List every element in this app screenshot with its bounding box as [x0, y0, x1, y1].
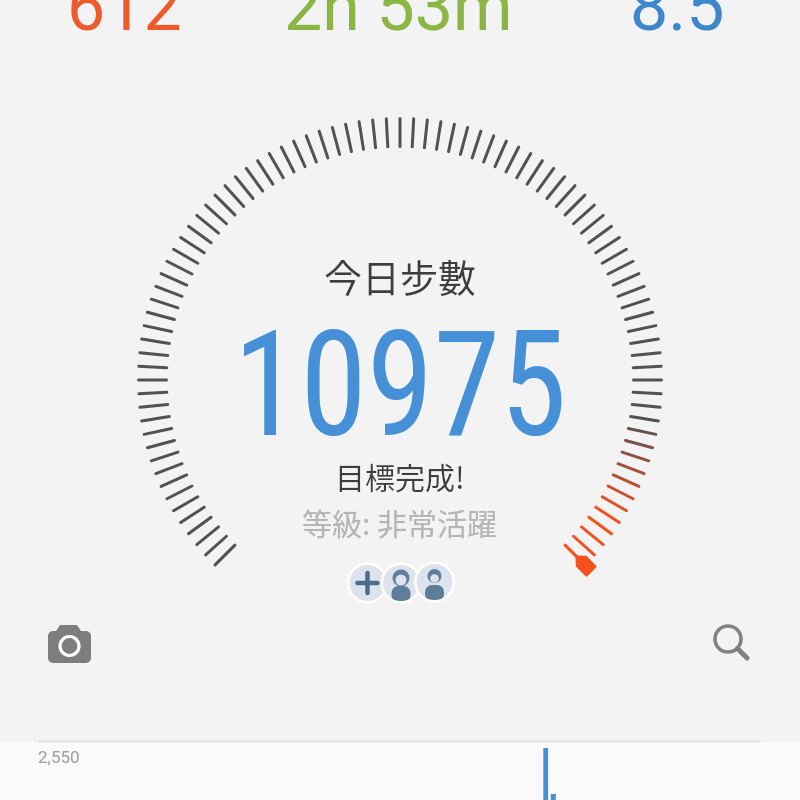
button[interactable]: [344, 560, 456, 606]
staticText: 2h 53m: [284, 0, 513, 47]
staticText: 612: [67, 0, 182, 47]
staticText: 10975: [233, 300, 567, 471]
button[interactable]: [34, 612, 106, 676]
staticText: 今日步數: [324, 248, 477, 303]
button[interactable]: [700, 611, 764, 675]
staticText: 等級: 非常活躍: [302, 500, 498, 543]
staticText: 8.5: [630, 0, 725, 47]
staticText: 目標完成!: [335, 454, 465, 497]
staticText: 2,550: [38, 747, 80, 767]
